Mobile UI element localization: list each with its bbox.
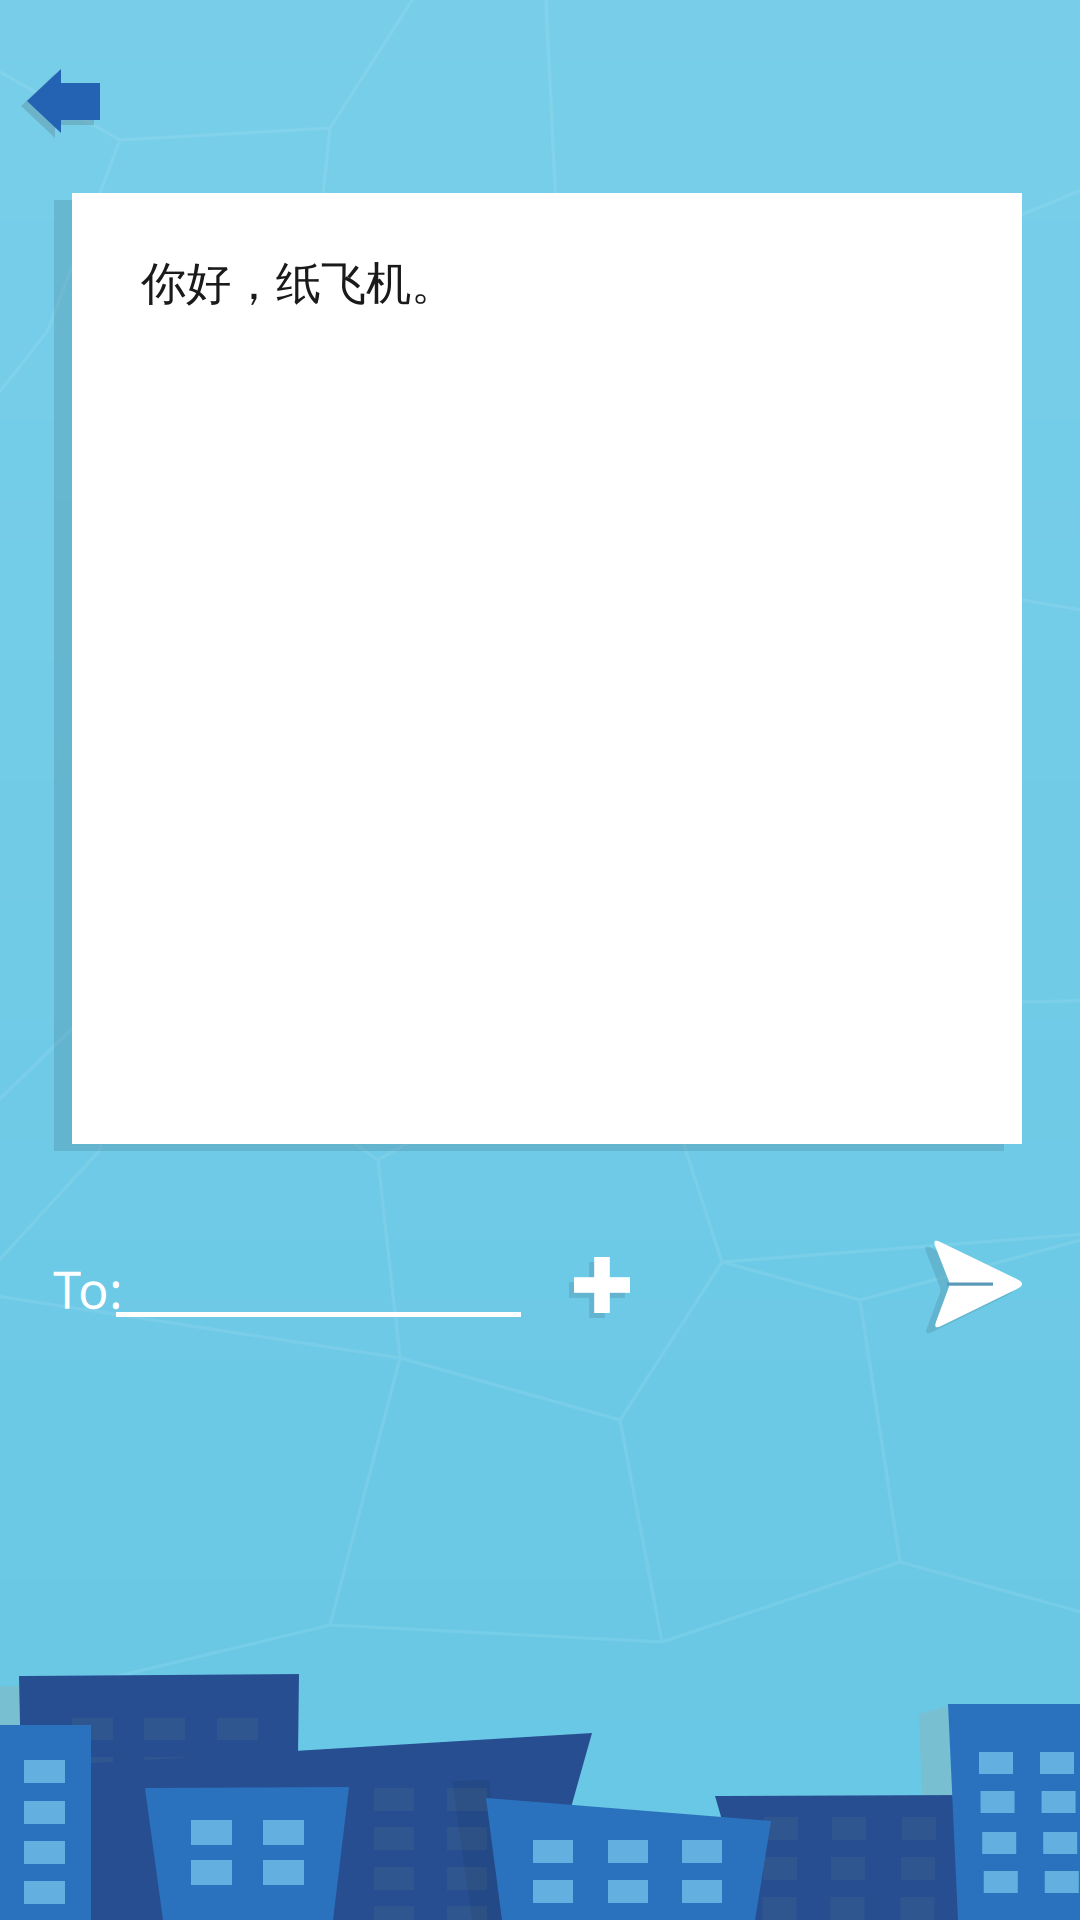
staticText: To:	[53, 1255, 123, 1323]
button[interactable]: Send	[917, 1228, 1037, 1340]
staticText: 你好，纸飞机。	[141, 256, 456, 312]
button[interactable]: Add recipient	[564, 1250, 634, 1330]
button[interactable]: Back	[19, 58, 115, 142]
